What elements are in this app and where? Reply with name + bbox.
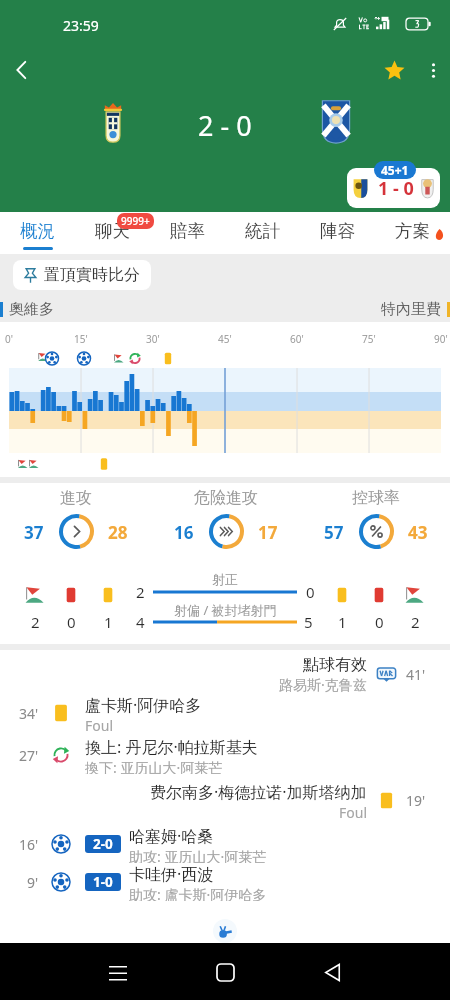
staticText: 射偏 / 被封堵射門 (174, 601, 277, 619)
staticText: 聊天 (95, 220, 130, 242)
staticText: 45' (218, 332, 232, 346)
button[interactable]: Live score (347, 168, 440, 208)
staticText: 2-0 (93, 835, 113, 853)
staticText: 28 (108, 521, 128, 543)
staticText: 助攻: 亚历山大·阿莱芒 (129, 847, 267, 863)
button[interactable]: 點球有效 (279, 655, 450, 693)
button[interactable]: 27' (0, 736, 450, 774)
staticText: 射正 (212, 571, 238, 587)
staticText: 9999+ (121, 214, 150, 228)
staticText: 卡哇伊·西波 (129, 863, 214, 885)
button[interactable]: 聊天 (75, 212, 150, 254)
staticText: 费尔南多·梅德拉诺·加斯塔纳加 (150, 781, 367, 803)
staticText: 統計 (245, 220, 280, 242)
staticText: 5 (304, 612, 313, 632)
staticText: 方案 (395, 220, 430, 242)
staticText: 陣容 (320, 220, 355, 242)
staticText: 37 (24, 521, 44, 543)
staticText: 9' (27, 873, 39, 892)
staticText: 45+1 (381, 162, 409, 178)
staticText: 19' (406, 791, 426, 810)
staticText: 4 (136, 612, 145, 632)
staticText: 34' (19, 704, 39, 723)
staticText: 2 (411, 612, 420, 632)
button[interactable]: 34' (0, 694, 450, 732)
button[interactable]: 賠率 (150, 212, 225, 254)
staticText: 43 (408, 521, 428, 543)
staticText: 75' (362, 332, 376, 346)
button[interactable]: 16' (0, 825, 450, 863)
button[interactable]: Recent apps (96, 950, 140, 994)
staticText: 換上: 丹尼尔·帕拉斯基夫 (85, 736, 258, 758)
staticText: 15' (74, 332, 88, 346)
staticText: 27' (19, 746, 39, 765)
staticText: Foul (85, 716, 113, 732)
staticText: Foul (339, 803, 367, 819)
staticText: 助攻: 盧卡斯·阿伊哈多 (129, 885, 267, 901)
staticText: 控球率 (352, 488, 400, 508)
staticText: 置頂實時比分 (44, 265, 140, 285)
staticText: 進攻 (60, 488, 92, 508)
staticText: 16 (174, 521, 194, 543)
staticText: 1 (338, 612, 347, 632)
staticText: 0 (306, 582, 315, 602)
staticText: 2 (31, 612, 40, 632)
staticText: 60' (290, 332, 304, 346)
staticText: 1 - 0 (378, 176, 414, 201)
staticText: 1-0 (93, 873, 113, 891)
staticText: 盧卡斯·阿伊哈多 (85, 694, 202, 716)
button[interactable]: Favourite (372, 48, 416, 92)
staticText: 點球有效 (303, 655, 367, 675)
staticText: 哈塞姆·哈桑 (129, 825, 214, 847)
staticText: 1 (104, 612, 113, 632)
button[interactable]: 9' (0, 863, 450, 901)
staticText: 概況 (20, 220, 55, 242)
button[interactable]: 陣容 (300, 212, 375, 254)
button[interactable]: Back (310, 950, 354, 994)
staticText: 路易斯·克鲁兹 (279, 675, 367, 693)
button[interactable]: 統計 (225, 212, 300, 254)
staticText: 0' (5, 332, 13, 346)
staticText: 2 - 0 (198, 107, 252, 144)
staticText: 0 (375, 612, 384, 632)
button[interactable]: 费尔南多·梅德拉诺·加斯塔纳加 (150, 781, 450, 819)
staticText: 2 (136, 582, 145, 602)
button[interactable]: More options (416, 53, 450, 87)
staticText: 危險進攻 (194, 488, 258, 508)
staticText: 57 (324, 521, 344, 543)
button[interactable]: Home (203, 950, 247, 994)
staticText: 0 (67, 612, 76, 632)
staticText: 30' (146, 332, 160, 346)
button[interactable]: 置頂實時比分 (13, 260, 151, 290)
button[interactable]: 概況 (0, 212, 75, 254)
staticText: 特內里費 (381, 300, 441, 319)
staticText: 換下: 亚历山大·阿莱芒 (85, 758, 223, 774)
staticText: 23:59 (63, 16, 99, 35)
button[interactable]: 方案 (375, 212, 450, 254)
staticText: 奧維多 (9, 300, 54, 319)
staticText: 41' (406, 665, 426, 684)
staticText: 17 (258, 521, 278, 543)
staticText: 16' (19, 835, 39, 854)
staticText: 賠率 (170, 220, 205, 242)
button[interactable]: Back (0, 48, 44, 92)
staticText: 90' (434, 332, 448, 346)
